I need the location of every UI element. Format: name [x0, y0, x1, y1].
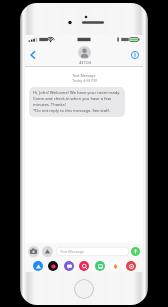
button[interactable]: 437-04: [78, 46, 91, 65]
button[interactable]: Back: [26, 48, 40, 62]
button[interactable]: App 1: [33, 261, 43, 271]
button[interactable]: App 3: [64, 261, 74, 271]
button[interactable]: App 7: [126, 261, 136, 271]
button[interactable]: Hi, John! Welcome! We have your room rea…: [29, 87, 125, 117]
button[interactable]: Apps: [42, 246, 53, 257]
button[interactable]: App 4: [79, 261, 89, 271]
button[interactable]: App 5: [95, 261, 105, 271]
staticText: Text Message: [72, 73, 96, 78]
staticText: Hi, John! Welcome! We have your room rea…: [33, 90, 121, 114]
button[interactable]: Text Message: [56, 247, 129, 256]
staticText: Today 4:58 PM: [72, 78, 97, 83]
button[interactable]: Details: [129, 49, 141, 61]
staticText: 437-04: [79, 60, 91, 65]
button[interactable]: App 2: [48, 261, 58, 271]
button[interactable]: App 6: [110, 261, 120, 271]
button[interactable]: Camera: [28, 246, 39, 257]
button[interactable]: Home: [74, 279, 94, 299]
button[interactable]: Send: [131, 247, 140, 256]
staticText: Text Message: [60, 249, 85, 254]
